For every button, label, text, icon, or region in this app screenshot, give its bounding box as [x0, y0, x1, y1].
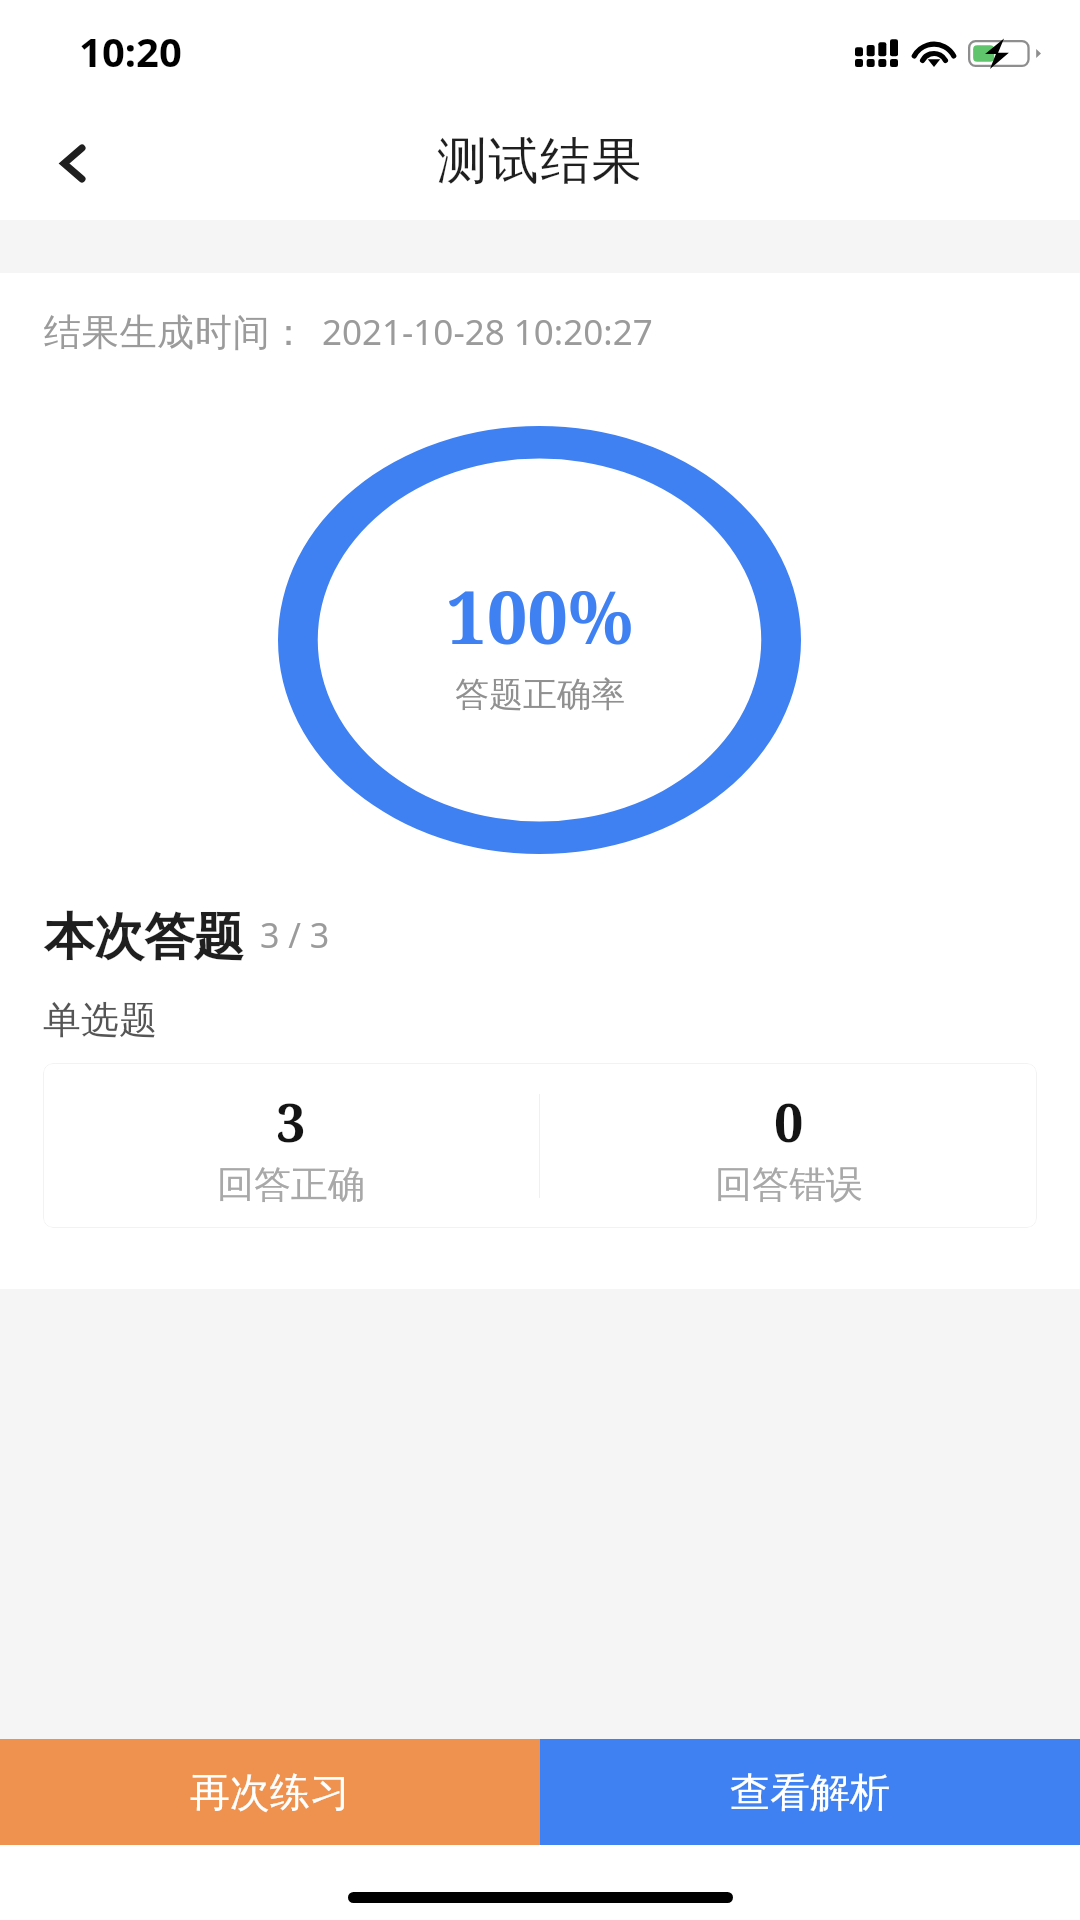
- staticText: 单选题: [43, 996, 157, 1044]
- button[interactable]: 查看解析: [540, 1739, 1080, 1845]
- staticText: 3: [276, 1086, 306, 1157]
- staticText: 本次答题: [44, 906, 244, 969]
- staticText: 3 / 3: [260, 912, 330, 958]
- button[interactable]: 3: [43, 1063, 1037, 1228]
- other: Wi-Fi: [913, 40, 955, 66]
- staticText: 再次练习: [190, 1767, 350, 1817]
- staticText: 答题正确率: [455, 673, 625, 716]
- staticText: 测试结果: [437, 130, 644, 193]
- other: Battery charging: [968, 40, 1041, 67]
- staticText: 回答正确: [217, 1161, 365, 1208]
- staticText: 10:20: [79, 24, 182, 78]
- other: Cellular signal: [855, 39, 898, 67]
- button[interactable]: Back: [15, 105, 131, 221]
- staticText: 回答错误: [715, 1161, 863, 1208]
- button[interactable]: 再次练习: [0, 1739, 540, 1845]
- staticText: 结果生成时间：: [44, 309, 308, 356]
- staticText: 查看解析: [730, 1767, 890, 1817]
- staticText: 100%: [446, 567, 634, 665]
- staticText: 2021-10-28 10:20:27: [322, 308, 653, 356]
- staticText: 0: [774, 1086, 804, 1157]
